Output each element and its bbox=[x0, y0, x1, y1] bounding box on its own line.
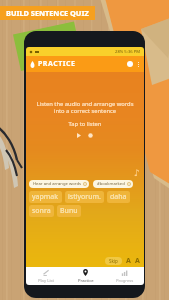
button[interactable]: Profile bbox=[127, 61, 133, 67]
button[interactable]: daha bbox=[107, 191, 130, 203]
button[interactable]: Decrease text size bbox=[135, 256, 140, 266]
staticText: Practice bbox=[78, 278, 94, 284]
staticText: BUILD SENTENCE QUIZ bbox=[6, 8, 89, 18]
staticText: A bbox=[126, 256, 131, 266]
staticText: istiyorum. bbox=[68, 192, 101, 202]
button[interactable]: Audio bbox=[134, 168, 140, 178]
button[interactable]: sonra bbox=[29, 205, 54, 217]
staticText: Bunu bbox=[60, 206, 78, 216]
staticText: Play List bbox=[38, 278, 54, 284]
staticText: #bookmarked bbox=[97, 181, 125, 187]
staticText: Hear and arrange words bbox=[33, 181, 81, 187]
staticText: A bbox=[135, 256, 140, 266]
button[interactable]: Bunu bbox=[57, 205, 81, 217]
staticText: yapmak bbox=[32, 192, 59, 202]
button[interactable]: #bookmarked bbox=[93, 180, 133, 188]
button[interactable]: More options bbox=[137, 62, 140, 67]
staticText: PRACTICE bbox=[38, 59, 76, 69]
staticText: Listen the audio and arrange words into … bbox=[26, 100, 144, 115]
staticText: ♪ bbox=[134, 168, 140, 178]
button[interactable]: Play List bbox=[26, 267, 66, 285]
button[interactable]: Skip bbox=[105, 257, 122, 265]
button[interactable]: Hear and arrange words bbox=[29, 180, 89, 188]
button[interactable]: Progress bbox=[105, 267, 144, 285]
button[interactable]: Play slowly bbox=[87, 132, 94, 139]
staticText: 28% 5:36 PM bbox=[115, 49, 141, 55]
button[interactable]: Practice bbox=[66, 267, 105, 285]
button[interactable]: istiyorum. bbox=[65, 191, 104, 203]
staticText: Progress bbox=[116, 278, 134, 284]
staticText: daha bbox=[110, 192, 127, 202]
button[interactable]: yapmak bbox=[29, 191, 62, 203]
button[interactable]: Increase text size bbox=[126, 256, 131, 266]
staticText: sonra bbox=[32, 206, 51, 216]
staticText: Skip bbox=[109, 258, 118, 264]
button[interactable]: Play audio bbox=[76, 132, 82, 139]
staticText: Tap to listen bbox=[26, 120, 144, 128]
